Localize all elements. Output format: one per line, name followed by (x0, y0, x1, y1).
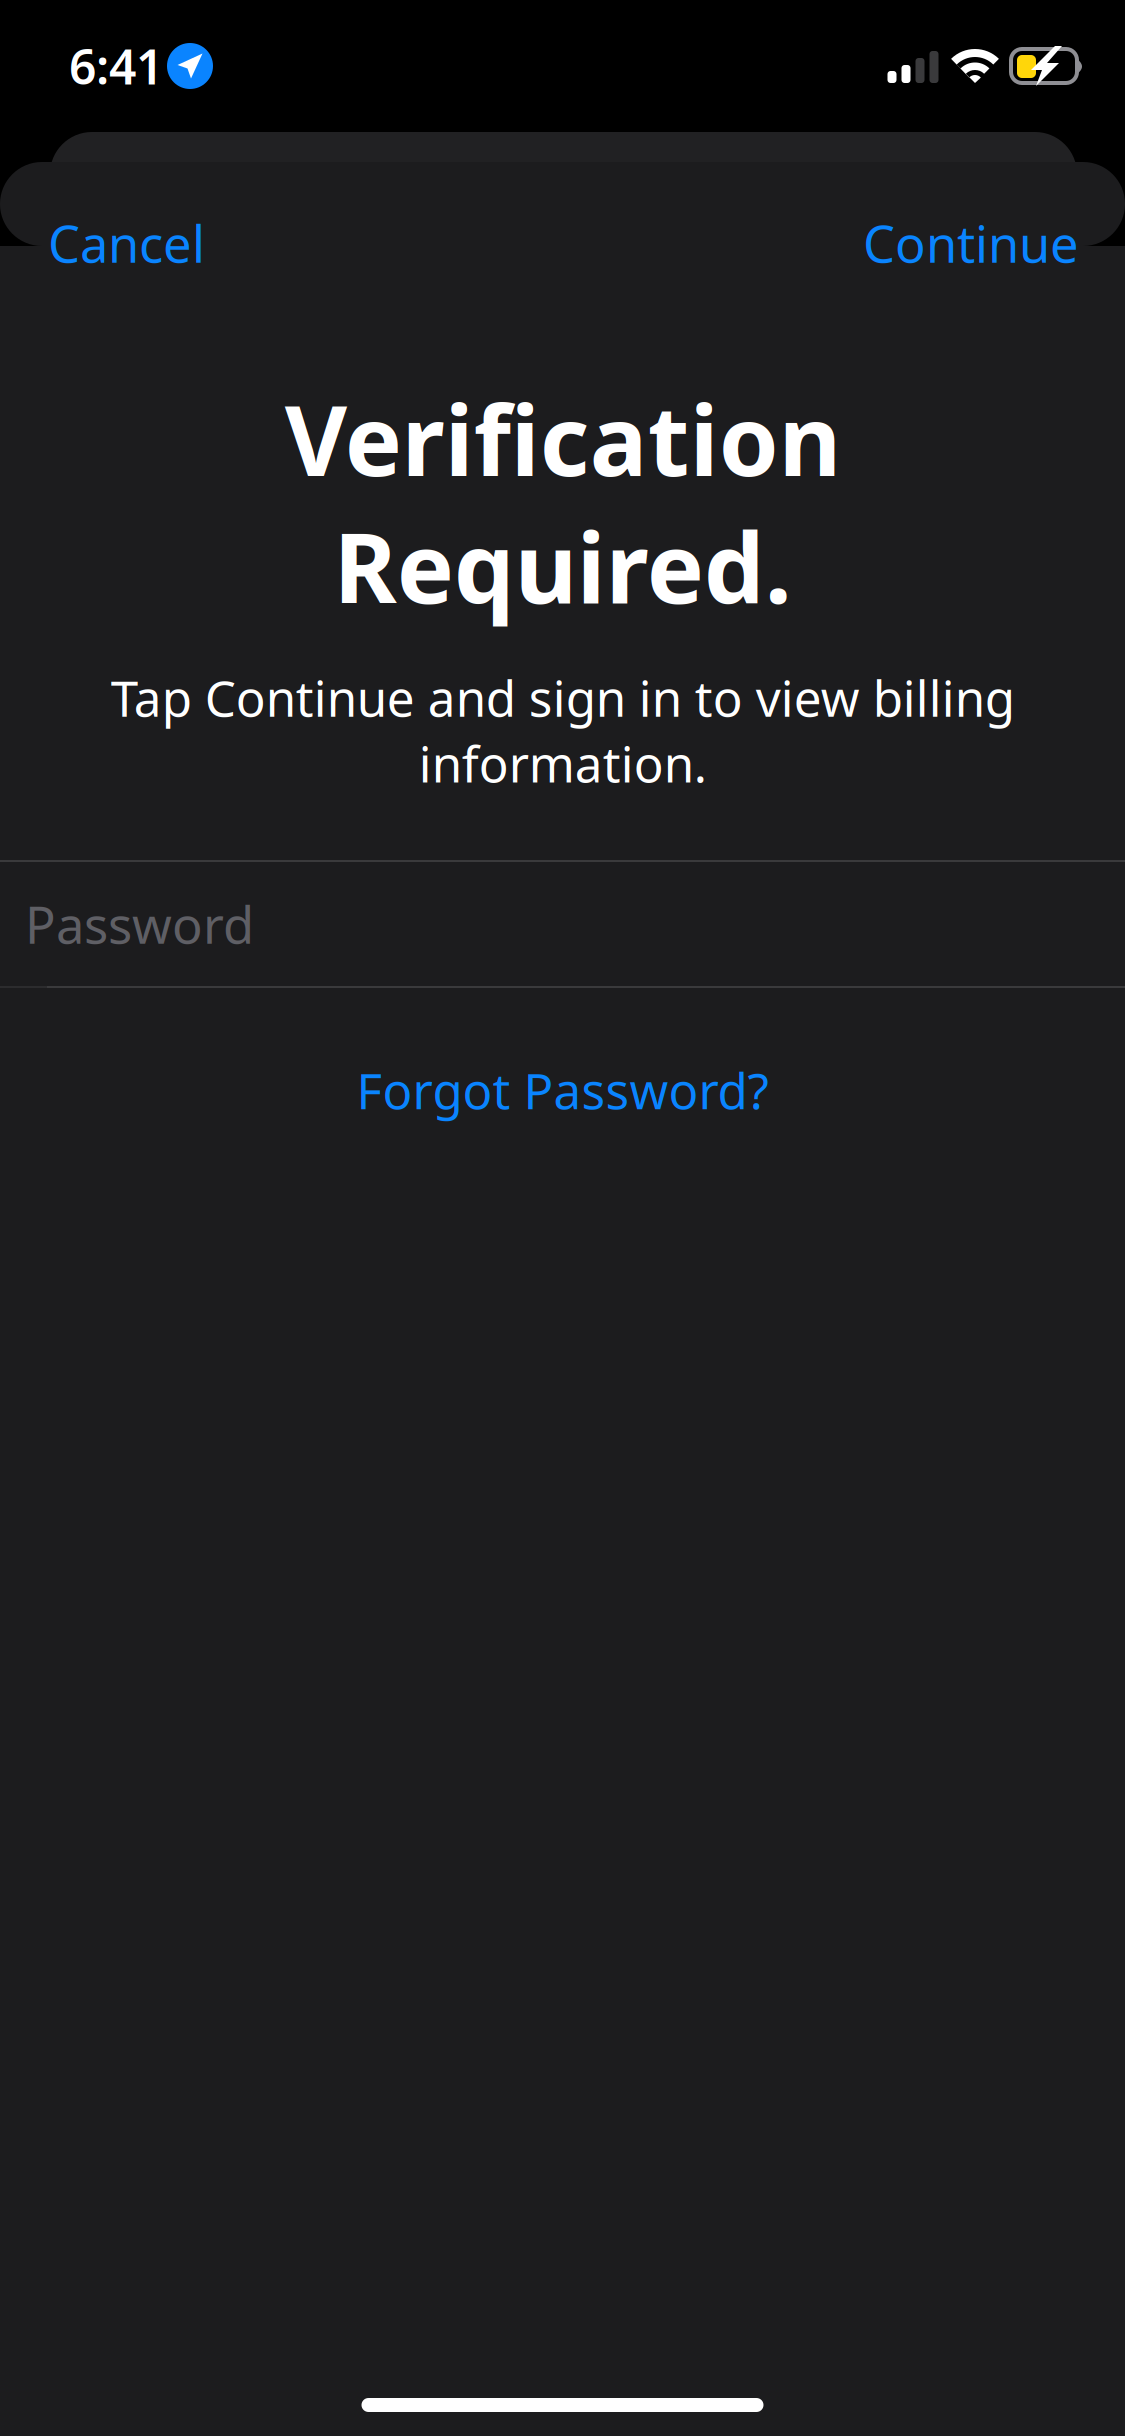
button[interactable]: Cancel (38, 189, 215, 297)
staticText: Verification Required. (284, 375, 840, 630)
staticText: Password (25, 890, 254, 958)
staticText: Cancel (48, 209, 205, 277)
staticText: 6:41 (69, 34, 163, 98)
button[interactable]: Forgot Password? (332, 1040, 792, 1140)
button[interactable]: Password (0, 860, 1125, 988)
staticText: Forgot Password? (356, 1057, 768, 1123)
staticText: Tap Continue and sign in to view billing… (110, 665, 1014, 796)
staticText: Continue (863, 209, 1079, 277)
button[interactable]: Continue (853, 189, 1089, 297)
